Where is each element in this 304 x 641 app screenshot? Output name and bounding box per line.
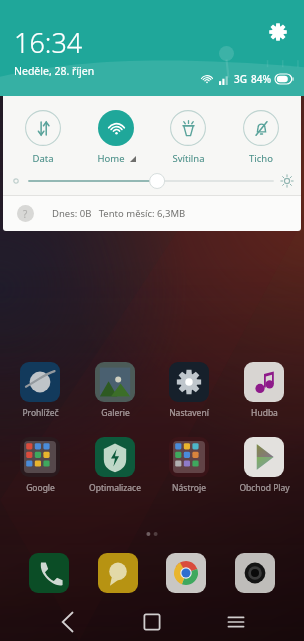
staticText: Data xyxy=(32,152,54,165)
button[interactable]: Galerie xyxy=(80,362,150,419)
staticText: 16:34 xyxy=(14,24,83,61)
staticText: Prohlížeč xyxy=(22,407,59,419)
staticText: Nástroje xyxy=(172,482,206,494)
button[interactable]: Optimalizace xyxy=(80,437,150,494)
staticText: Hudba xyxy=(251,407,278,419)
button[interactable]: Svítilna xyxy=(155,108,221,167)
button[interactable]: Back xyxy=(49,603,87,641)
staticText: Optimalizace xyxy=(89,482,141,494)
button[interactable]: Google xyxy=(5,437,75,494)
button[interactable]: Chrome xyxy=(166,553,206,593)
button[interactable]: ? xyxy=(3,196,301,231)
button[interactable]: Settings xyxy=(260,14,296,50)
button[interactable]: Prohlížeč xyxy=(5,362,75,419)
button[interactable]: Obchod Play xyxy=(229,437,299,494)
button[interactable]: Home xyxy=(83,108,149,167)
staticText: 3G xyxy=(234,72,247,86)
button[interactable]: Nastavení xyxy=(154,362,224,419)
button[interactable]: Data xyxy=(10,108,76,167)
button[interactable]: Hudba xyxy=(229,362,299,419)
button[interactable] xyxy=(3,167,301,195)
staticText: Ticho xyxy=(249,152,273,165)
staticText: 84% xyxy=(251,72,271,86)
staticText: Svítilna xyxy=(172,152,205,165)
button[interactable]: Nástroje xyxy=(154,437,224,494)
button[interactable]: Ticho xyxy=(228,108,294,167)
staticText: ? xyxy=(23,207,28,221)
staticText: Neděle, 28. říjen xyxy=(14,64,95,78)
staticText: Galerie xyxy=(101,407,130,419)
button[interactable]: Home xyxy=(133,603,171,641)
button[interactable]: Menu xyxy=(217,603,255,641)
button[interactable]: Messages xyxy=(98,553,138,593)
staticText: Dnes: 0B Tento měsíc: 6,3MB xyxy=(52,207,186,220)
staticText: Home xyxy=(97,152,125,165)
staticText: Google xyxy=(26,482,55,494)
button[interactable]: Phone xyxy=(29,553,69,593)
button[interactable]: Camera xyxy=(235,553,275,593)
staticText: Obchod Play xyxy=(239,482,290,494)
staticText: Nastavení xyxy=(169,407,209,419)
